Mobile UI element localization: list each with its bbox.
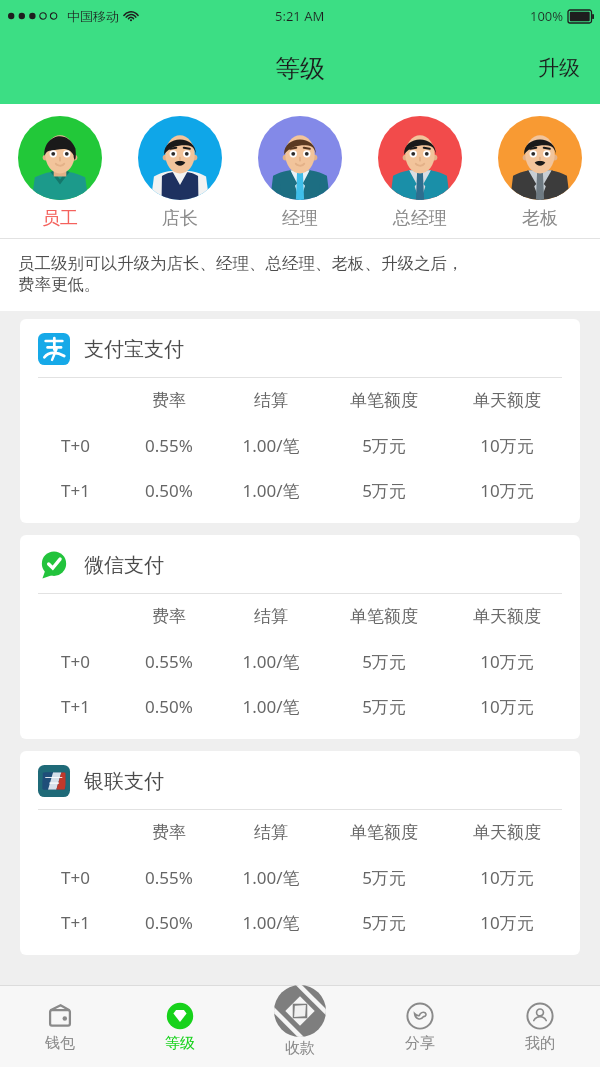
button[interactable]: 支付宝支付 bbox=[20, 319, 580, 523]
staticText: 5万元 bbox=[362, 650, 406, 673]
staticText: T+1 bbox=[61, 479, 90, 502]
staticText: 单天额度 bbox=[473, 822, 541, 843]
staticText: 10万元 bbox=[480, 650, 534, 673]
staticText: 结算 bbox=[254, 822, 288, 843]
staticText: 总经理 bbox=[393, 207, 447, 230]
staticText: 等级 bbox=[165, 1034, 195, 1053]
staticText: 0.50% bbox=[145, 695, 193, 718]
staticText: 单天额度 bbox=[473, 606, 541, 627]
staticText: 费率 bbox=[152, 606, 186, 627]
button[interactable]: 店长 bbox=[120, 114, 240, 232]
staticText: 经理 bbox=[282, 207, 318, 230]
staticText: 0.55% bbox=[145, 866, 193, 889]
staticText: 10万元 bbox=[480, 911, 534, 934]
staticText: 10万元 bbox=[480, 479, 534, 502]
button[interactable]: 我的 bbox=[480, 986, 600, 1067]
staticText: 1.00/笔 bbox=[242, 911, 300, 934]
button[interactable]: 银联支付 bbox=[20, 751, 580, 955]
staticText: 5万元 bbox=[362, 479, 406, 502]
staticText: 10万元 bbox=[480, 695, 534, 718]
button[interactable]: 微信支付 bbox=[20, 535, 580, 739]
staticText: 1.00/笔 bbox=[242, 479, 300, 502]
staticText: 单笔额度 bbox=[350, 390, 418, 411]
staticText: 中国移动 bbox=[67, 8, 119, 24]
staticText: 等级 bbox=[275, 53, 325, 84]
staticText: 收款 bbox=[285, 1039, 315, 1058]
staticText: 5:21 AM bbox=[275, 7, 325, 25]
button[interactable]: 经理 bbox=[240, 114, 360, 232]
staticText: 1.00/笔 bbox=[242, 650, 300, 673]
staticText: T+1 bbox=[61, 695, 90, 718]
staticText: 费率 bbox=[152, 822, 186, 843]
staticText: 我的 bbox=[525, 1034, 555, 1053]
staticText: 银联支付 bbox=[84, 769, 164, 794]
button[interactable]: 收款 bbox=[274, 985, 326, 1037]
staticText: 0.50% bbox=[145, 911, 193, 934]
staticText: 结算 bbox=[254, 390, 288, 411]
staticText: 钱包 bbox=[45, 1034, 75, 1053]
staticText: 0.55% bbox=[145, 650, 193, 673]
staticText: 5万元 bbox=[362, 434, 406, 457]
staticText: 1.00/笔 bbox=[242, 866, 300, 889]
button[interactable]: 总经理 bbox=[360, 114, 480, 232]
staticText: 1.00/笔 bbox=[242, 434, 300, 457]
staticText: 店长 bbox=[162, 207, 198, 230]
staticText: 员工 bbox=[42, 207, 78, 230]
staticText: 单天额度 bbox=[473, 390, 541, 411]
staticText: 升级 bbox=[538, 55, 580, 81]
staticText: T+0 bbox=[61, 434, 90, 457]
staticText: 0.55% bbox=[145, 434, 193, 457]
staticText: 分享 bbox=[405, 1034, 435, 1053]
staticText: 员工级别可以升级为店长、经理、总经理、老板、升级之后， bbox=[18, 253, 464, 274]
staticText: 微信支付 bbox=[84, 553, 164, 578]
staticText: 100% bbox=[530, 7, 564, 25]
button[interactable]: 员工 bbox=[0, 114, 120, 232]
staticText: 费率更低。 bbox=[18, 274, 101, 295]
button[interactable]: 升级 bbox=[518, 41, 600, 95]
staticText: 0.50% bbox=[145, 479, 193, 502]
staticText: 单笔额度 bbox=[350, 606, 418, 627]
staticText: 老板 bbox=[522, 207, 558, 230]
button[interactable]: 钱包 bbox=[0, 986, 120, 1067]
staticText: 10万元 bbox=[480, 866, 534, 889]
button[interactable]: 分享 bbox=[360, 986, 480, 1067]
staticText: T+1 bbox=[61, 911, 90, 934]
staticText: 5万元 bbox=[362, 695, 406, 718]
staticText: 1.00/笔 bbox=[242, 695, 300, 718]
staticText: 结算 bbox=[254, 606, 288, 627]
staticText: 支付宝支付 bbox=[84, 337, 184, 362]
staticText: T+0 bbox=[61, 866, 90, 889]
staticText: T+0 bbox=[61, 650, 90, 673]
staticText: 10万元 bbox=[480, 434, 534, 457]
staticText: 5万元 bbox=[362, 866, 406, 889]
button[interactable]: 老板 bbox=[480, 114, 600, 232]
staticText: 费率 bbox=[152, 390, 186, 411]
staticText: 单笔额度 bbox=[350, 822, 418, 843]
staticText: 5万元 bbox=[362, 911, 406, 934]
button[interactable]: 等级 bbox=[120, 986, 240, 1067]
